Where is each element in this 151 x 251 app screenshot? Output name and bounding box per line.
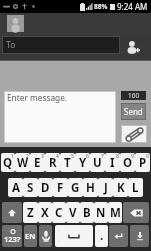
- staticText: Enter message.: [7, 92, 68, 103]
- button[interactable]: Q: [1, 153, 15, 172]
- button[interactable]: Voice input: [39, 225, 52, 247]
- staticText: Y: [79, 155, 87, 171]
- staticText: 9:24 AM: [117, 1, 148, 12]
- staticText: W: [17, 155, 29, 171]
- staticText: R: [49, 155, 57, 171]
- staticText: U: [93, 155, 102, 171]
- button[interactable]: N: [94, 202, 108, 223]
- staticText: O: [123, 155, 133, 171]
- staticText: M: [110, 205, 121, 221]
- staticText: 4: [56, 153, 59, 160]
- button[interactable]: To: [2, 36, 120, 54]
- button[interactable]: .: [95, 225, 108, 247]
- button[interactable]: H: [83, 178, 98, 197]
- button[interactable]: Z: [23, 202, 38, 223]
- button[interactable]: Hide keyboard: [130, 225, 149, 247]
- button[interactable]: P: [135, 153, 150, 172]
- button[interactable]: M: [108, 202, 122, 223]
- staticText: 9: [131, 153, 134, 160]
- button[interactable]: Space: [55, 225, 93, 247]
- button[interactable]: T: [60, 153, 75, 172]
- staticText: 5: [71, 153, 74, 160]
- staticText: Q: [3, 155, 13, 171]
- staticText: A: [12, 180, 20, 196]
- staticText: EN: [25, 231, 36, 241]
- button[interactable]: C: [52, 202, 66, 223]
- staticText: Send: [124, 106, 143, 117]
- staticText: K: [117, 180, 125, 196]
- staticText: S: [27, 180, 34, 196]
- button[interactable]: Attach file: [121, 125, 147, 143]
- staticText: 7: [101, 153, 104, 160]
- staticText: T: [64, 155, 71, 171]
- button[interactable]: Enter: [109, 225, 128, 247]
- staticText: L: [132, 180, 139, 196]
- button[interactable]: Send: [121, 103, 146, 120]
- staticText: 2: [26, 153, 29, 160]
- staticText: X: [41, 205, 49, 221]
- button[interactable]: G: [68, 178, 83, 197]
- staticText: P: [139, 155, 147, 171]
- staticText: 0: [146, 153, 149, 160]
- button[interactable]: F: [53, 178, 68, 197]
- staticText: J: [104, 180, 108, 196]
- staticText: G: [71, 180, 80, 196]
- button[interactable]: E: [30, 153, 45, 172]
- staticText: 6: [86, 153, 89, 160]
- button[interactable]: U: [90, 153, 105, 172]
- staticText: F: [57, 180, 64, 196]
- button[interactable]: R: [45, 153, 60, 172]
- button[interactable]: W: [15, 153, 30, 172]
- button[interactable]: O: [120, 153, 135, 172]
- staticText: I: [110, 155, 115, 171]
- staticText: 8: [116, 153, 119, 160]
- button[interactable]: Symbols: [2, 225, 22, 247]
- staticText: E: [34, 155, 41, 171]
- staticText: 1: [11, 153, 14, 160]
- button[interactable]: D: [38, 178, 53, 197]
- button[interactable]: Contact photo: [7, 15, 24, 32]
- staticText: 160: [128, 91, 140, 100]
- button[interactable]: S: [23, 178, 38, 197]
- staticText: 3: [41, 153, 44, 160]
- button[interactable]: L: [128, 178, 143, 197]
- button[interactable]: J: [98, 178, 113, 197]
- button[interactable]: Enter message.: [4, 91, 116, 143]
- button[interactable]: Language: [24, 225, 37, 247]
- button[interactable]: A: [8, 178, 23, 197]
- button[interactable]: K: [113, 178, 128, 197]
- staticText: V: [69, 205, 77, 221]
- button[interactable]: Y: [75, 153, 90, 172]
- button[interactable]: B: [80, 202, 94, 223]
- staticText: .: [100, 228, 104, 244]
- staticText: D: [41, 180, 50, 196]
- staticText: B: [83, 205, 91, 221]
- staticText: H: [86, 180, 95, 196]
- staticText: N: [96, 205, 106, 221]
- button[interactable]: Backspace: [123, 202, 149, 223]
- staticText: 88%: [94, 2, 108, 11]
- staticText: 123?: [4, 234, 21, 244]
- button[interactable]: V: [66, 202, 80, 223]
- button[interactable]: X: [38, 202, 52, 223]
- staticText: To: [6, 39, 16, 51]
- staticText: C: [55, 205, 63, 221]
- button[interactable]: Add recipient: [123, 36, 143, 56]
- button[interactable]: I: [105, 153, 120, 172]
- button[interactable]: Shift: [2, 202, 22, 223]
- staticText: Z: [27, 205, 34, 221]
